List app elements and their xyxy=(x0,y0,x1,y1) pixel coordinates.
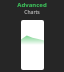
staticText: Charts xyxy=(24,9,40,16)
staticText: Advanced xyxy=(17,1,47,9)
